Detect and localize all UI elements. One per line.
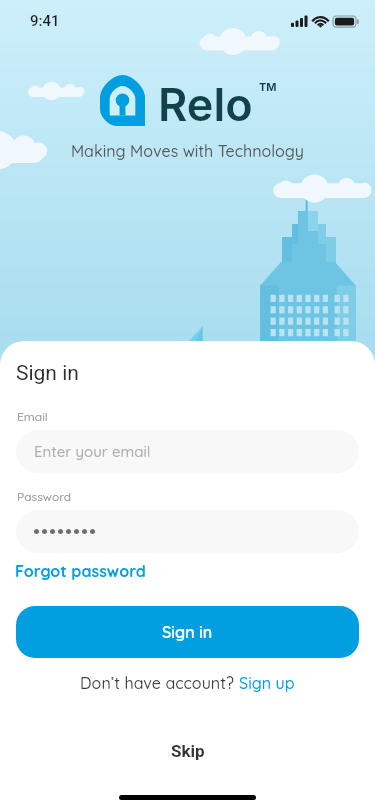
button[interactable]: Enter your email (16, 430, 359, 473)
staticText: Email (17, 409, 48, 424)
staticText: Sign up (239, 673, 295, 693)
other: Status icons (291, 15, 356, 28)
staticText: Skip (171, 741, 205, 761)
staticText: Sign in (16, 361, 79, 386)
staticText: Password (17, 489, 72, 504)
staticText: Making Moves with Technology (0, 141, 375, 161)
staticText: 9:41 (30, 12, 60, 30)
staticText: Forgot password (15, 561, 146, 581)
staticText: TM (259, 80, 277, 93)
staticText: Enter your email (34, 442, 151, 461)
staticText: Don’t have account? (80, 673, 239, 693)
button[interactable]: Forgot password (15, 561, 146, 581)
staticText: Relo (158, 77, 253, 131)
button[interactable] (16, 510, 359, 553)
other: Relo logo (100, 75, 145, 126)
button[interactable]: Sign in (16, 606, 359, 658)
button[interactable]: Skip (145, 735, 231, 767)
button[interactable]: Sign up (239, 673, 295, 693)
staticText: Sign in (162, 622, 213, 642)
